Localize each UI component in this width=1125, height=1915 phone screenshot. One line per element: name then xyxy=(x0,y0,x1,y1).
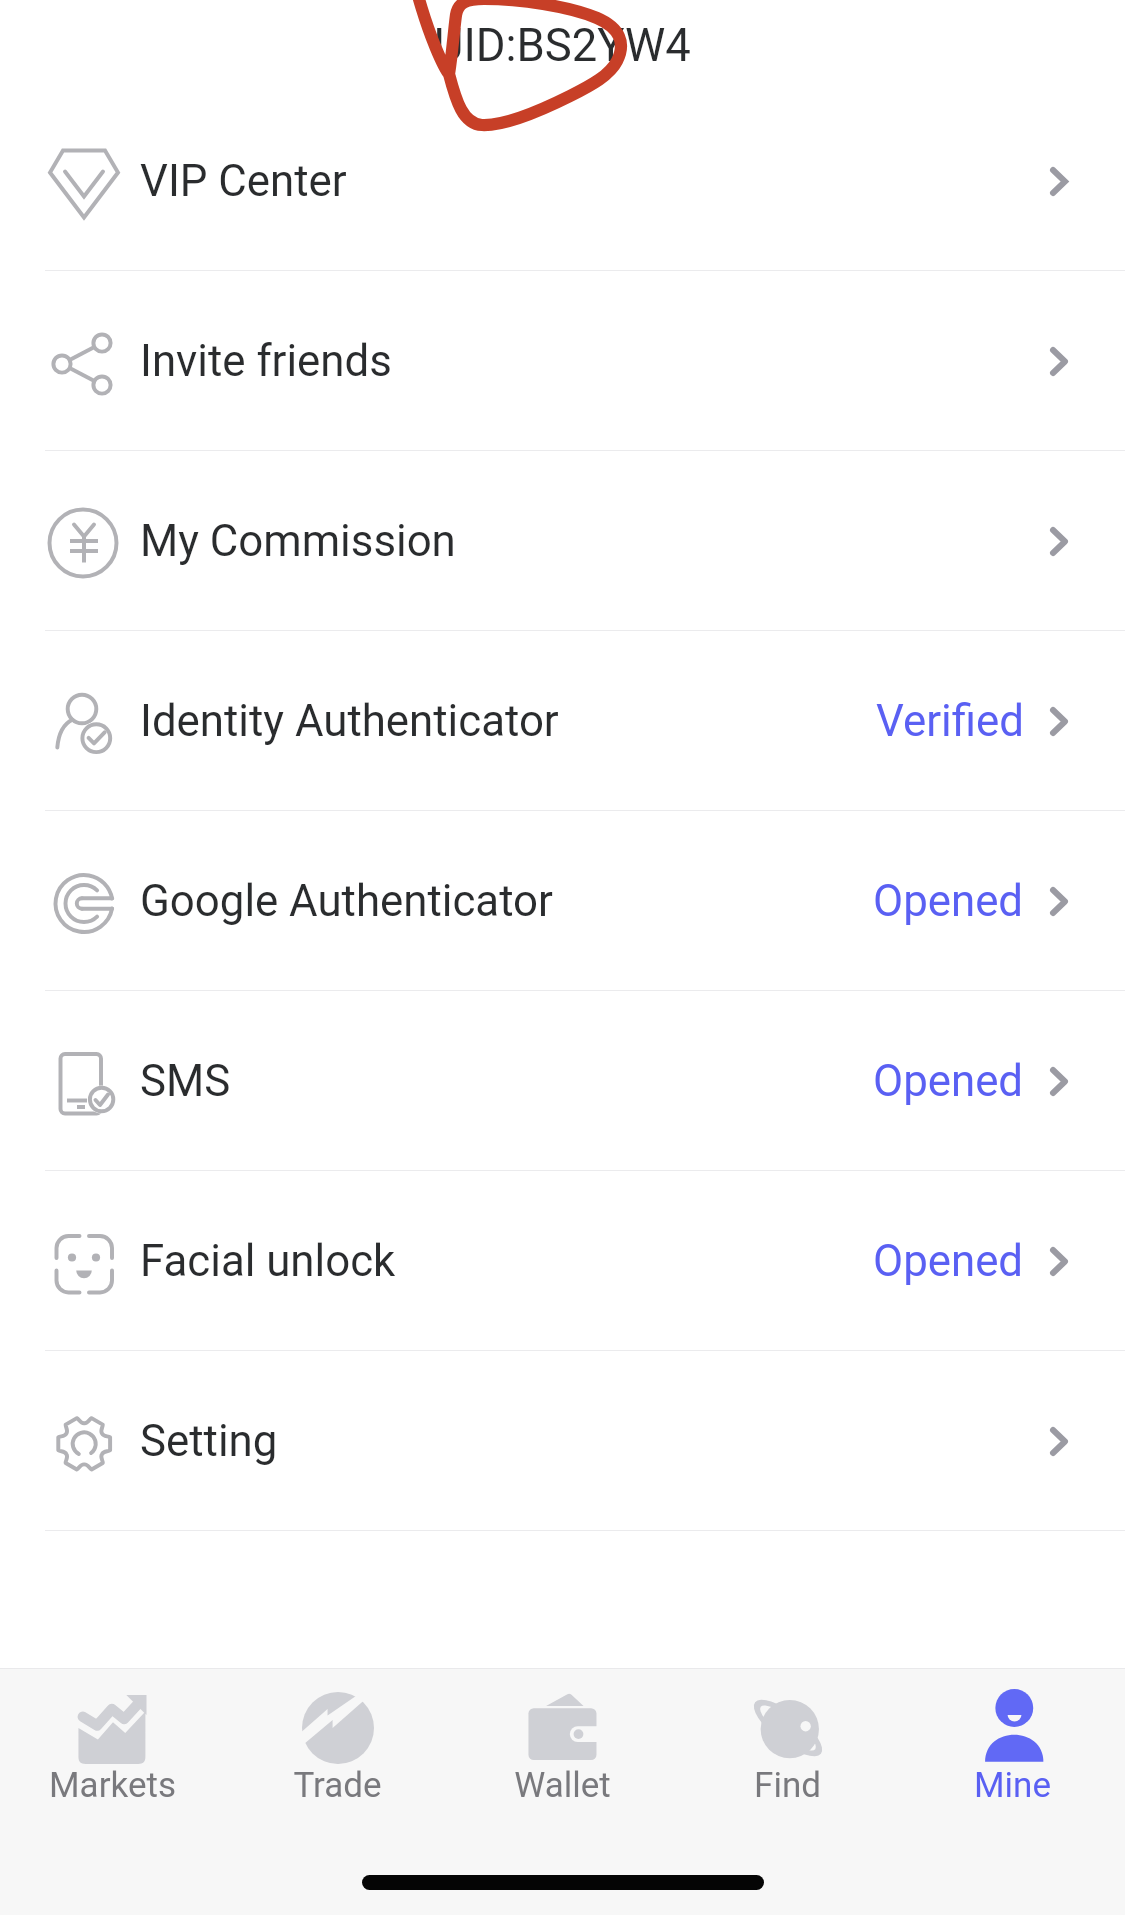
staticText: Opened xyxy=(873,1235,1024,1286)
staticText: VIP Center xyxy=(140,155,347,206)
staticText: Opened xyxy=(873,875,1024,926)
staticText: Mine xyxy=(974,1765,1051,1806)
staticText: Google Authenticator xyxy=(140,875,553,926)
button[interactable]: My Commission xyxy=(0,451,1125,630)
button[interactable]: Wallet xyxy=(450,1669,675,1806)
staticText: SMS xyxy=(140,1055,231,1106)
button[interactable]: Setting xyxy=(0,1351,1125,1530)
staticText: Markets xyxy=(49,1765,176,1806)
staticText: Opened xyxy=(873,1055,1024,1106)
staticText: UID:BS2YW4 xyxy=(434,19,691,72)
staticText: Wallet xyxy=(514,1765,611,1806)
staticText: Facial unlock xyxy=(140,1235,396,1286)
button[interactable]: Trade xyxy=(225,1669,450,1806)
staticText: My Commission xyxy=(140,515,456,566)
button[interactable]: Find xyxy=(675,1669,900,1806)
button[interactable]: Invite friends xyxy=(0,271,1125,450)
staticText: Setting xyxy=(140,1415,278,1466)
staticText: Invite friends xyxy=(140,335,392,386)
button[interactable]: Google Authenticator xyxy=(0,811,1125,990)
staticText: Trade xyxy=(293,1765,382,1806)
staticText: Identity Authenticator xyxy=(140,695,559,746)
staticText: Find xyxy=(754,1765,821,1806)
button[interactable]: VIP Center xyxy=(0,91,1125,270)
button[interactable]: SMS xyxy=(0,991,1125,1170)
button[interactable]: Identity Authenticator xyxy=(0,631,1125,810)
button[interactable]: Facial unlock xyxy=(0,1171,1125,1350)
button[interactable]: Markets xyxy=(0,1669,225,1806)
button[interactable]: Mine xyxy=(900,1669,1125,1806)
staticText: Verified xyxy=(876,695,1024,746)
